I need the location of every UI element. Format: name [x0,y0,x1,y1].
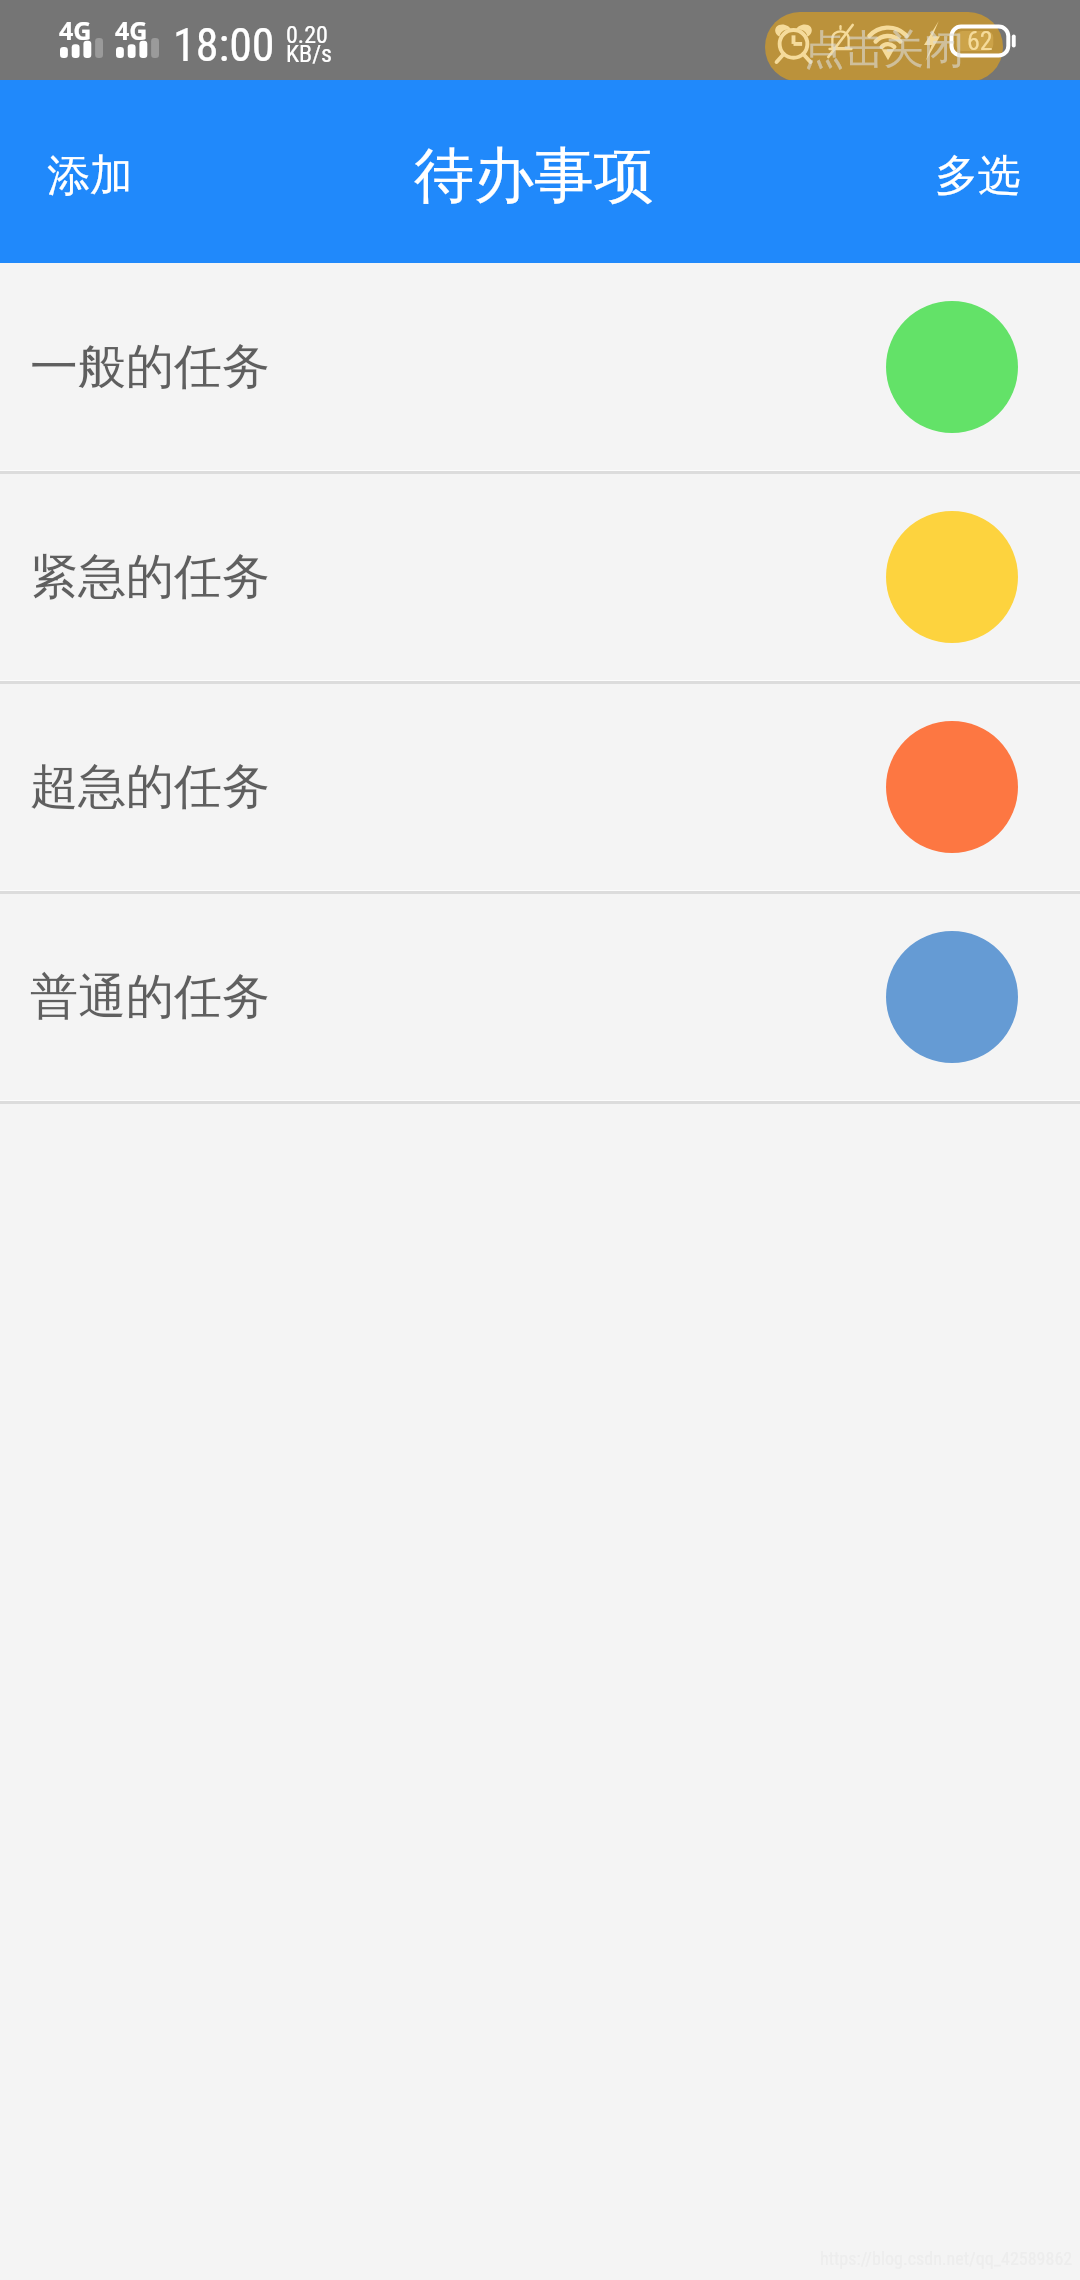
staticText: 4G [59,13,92,47]
button[interactable]: 点击关闭 [765,12,1003,82]
staticText: 点击关闭 [804,24,964,74]
staticText: 紧急的任务 [30,547,270,607]
button[interactable]: 一般的任务 [0,263,1080,470]
staticText: 超急的任务 [30,757,270,817]
button[interactable]: 紧急的任务 [0,474,1080,680]
staticText: 0.20 [286,21,328,49]
staticText: 多选 [935,149,1021,203]
button[interactable]: 添加 [0,80,180,263]
staticText: 普通的任务 [30,967,270,1027]
staticText: 62 [967,26,993,56]
staticText: KB/s [286,40,333,68]
staticText: 一般的任务 [30,337,270,397]
button[interactable]: 多选 [872,80,1080,263]
button[interactable]: 超急的任务 [0,684,1080,890]
staticText: 18:00 [173,18,275,72]
button[interactable]: 普通的任务 [0,894,1080,1100]
staticText: 4G [115,13,148,47]
staticText: 待办事项 [414,138,654,214]
staticText: 添加 [47,149,133,203]
